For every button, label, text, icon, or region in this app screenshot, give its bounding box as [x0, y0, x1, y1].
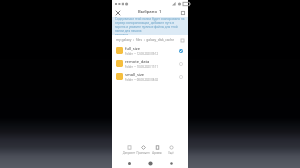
staticText: Ещё	[168, 151, 174, 155]
button[interactable]: Recents	[125, 159, 133, 167]
button[interactable]: Select	[178, 61, 184, 67]
button[interactable]: Архивы	[150, 144, 164, 156]
staticText: 1	[159, 9, 162, 15]
staticText: full_size	[125, 46, 141, 51]
button[interactable]: full_size	[112, 44, 188, 57]
staticText: Содержимое этой папки будет скопировано …	[115, 17, 185, 35]
staticText: Folder • 08.08.2023 08:02	[125, 78, 159, 82]
staticText: remote_data	[125, 59, 150, 64]
button[interactable]: remote_data	[112, 57, 188, 70]
staticText: my galaxy › files › galaxy_disk_cache	[116, 38, 175, 42]
button[interactable]: Back	[167, 159, 175, 167]
staticText: Архивы	[152, 151, 162, 155]
button[interactable]: Приложения	[136, 144, 150, 156]
button[interactable]: Документы	[122, 144, 136, 156]
button[interactable]: Close	[114, 9, 121, 16]
staticText: Folder • 10.08.2023 17:11	[125, 65, 159, 69]
button[interactable]: Ещё	[164, 144, 178, 156]
staticText: Документы	[122, 151, 136, 156]
button[interactable]: Selected	[178, 48, 184, 54]
button[interactable]: Grid view	[179, 9, 186, 16]
button[interactable]: small_size	[112, 70, 188, 83]
button[interactable]: Sort	[179, 37, 185, 43]
staticText: Выбрано	[138, 9, 158, 15]
staticText: Folder • 12.08.2023 09:12	[125, 52, 159, 56]
staticText: Приложения	[136, 151, 150, 156]
button[interactable]: Select	[178, 74, 184, 80]
staticText: small_size	[125, 72, 145, 77]
button[interactable]: Home	[146, 159, 154, 167]
